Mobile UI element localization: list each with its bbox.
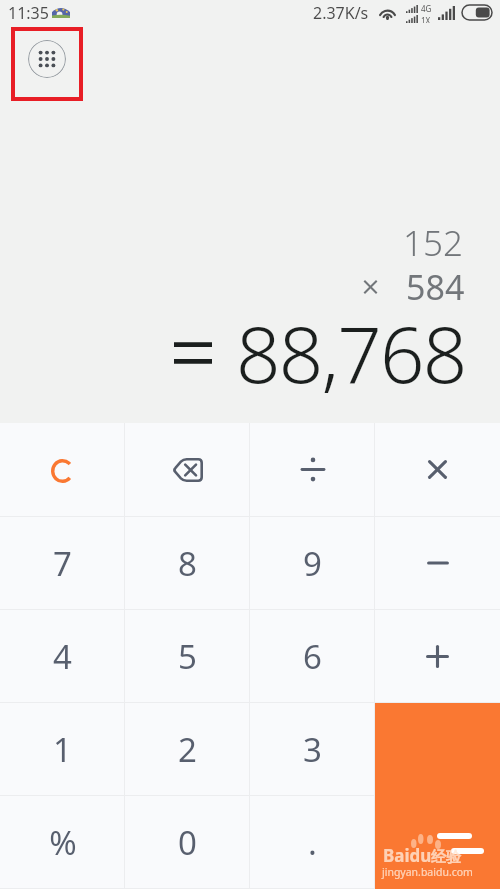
staticText: 经验 xyxy=(431,848,461,867)
staticText: Baidu xyxy=(383,844,432,867)
staticText: 4G xyxy=(421,3,432,14)
button[interactable]: Minus xyxy=(375,517,500,609)
button[interactable]: 9 xyxy=(250,517,375,609)
staticText: 584 xyxy=(406,264,465,310)
staticText: 1 xyxy=(53,727,72,772)
button[interactable]: 2 xyxy=(125,703,250,795)
button[interactable]: 0 xyxy=(125,796,250,888)
staticText: 9 xyxy=(303,541,322,586)
button[interactable]: 6 xyxy=(250,610,375,702)
staticText: jingyan.baidu.com xyxy=(382,865,473,879)
button[interactable]: Clear xyxy=(0,423,125,516)
button[interactable]: Backspace xyxy=(125,423,250,516)
staticText: 0 xyxy=(178,820,197,865)
staticText: 3 xyxy=(303,727,322,772)
button[interactable]: 3 xyxy=(250,703,375,795)
staticText: 6 xyxy=(303,634,322,679)
staticText: 4 xyxy=(53,634,72,679)
staticText: 2 xyxy=(178,727,197,772)
button[interactable]: 4 xyxy=(0,610,125,702)
staticText: 8 xyxy=(178,541,197,586)
button[interactable]: 5 xyxy=(125,610,250,702)
button[interactable]: 1 xyxy=(0,703,125,795)
button[interactable]: . xyxy=(250,796,375,888)
staticText: 11:35 xyxy=(8,2,49,24)
staticText: 88,768 xyxy=(236,300,466,406)
staticText: 7 xyxy=(53,541,72,586)
button[interactable]: Equals xyxy=(375,703,500,889)
button[interactable]: % xyxy=(0,796,125,888)
staticText: % xyxy=(49,820,77,865)
button[interactable]: Divide xyxy=(250,423,375,516)
button[interactable]: Multiply xyxy=(375,423,500,516)
staticText: 1X xyxy=(421,15,431,23)
button[interactable]: Plus xyxy=(375,610,500,702)
button[interactable]: 8 xyxy=(125,517,250,609)
staticText: 152 xyxy=(403,219,463,267)
button[interactable]: Menu xyxy=(28,40,66,78)
staticText: . xyxy=(308,820,317,865)
staticText: 2.37K/s xyxy=(313,2,369,24)
button[interactable]: 7 xyxy=(0,517,125,609)
staticText: 5 xyxy=(178,634,197,679)
